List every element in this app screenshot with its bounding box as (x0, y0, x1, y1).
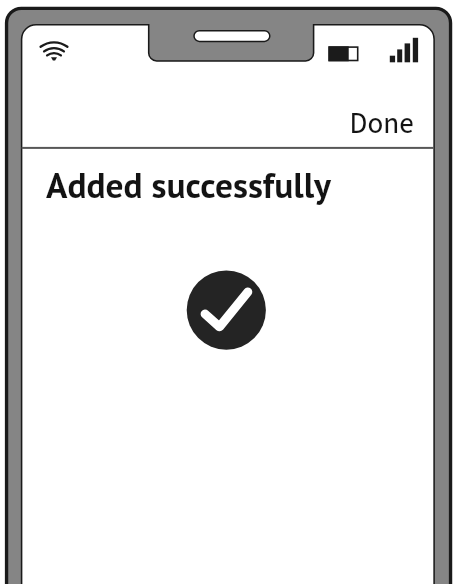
button[interactable]: Done (340, 103, 424, 145)
button[interactable]: Added successfully (187, 271, 266, 350)
